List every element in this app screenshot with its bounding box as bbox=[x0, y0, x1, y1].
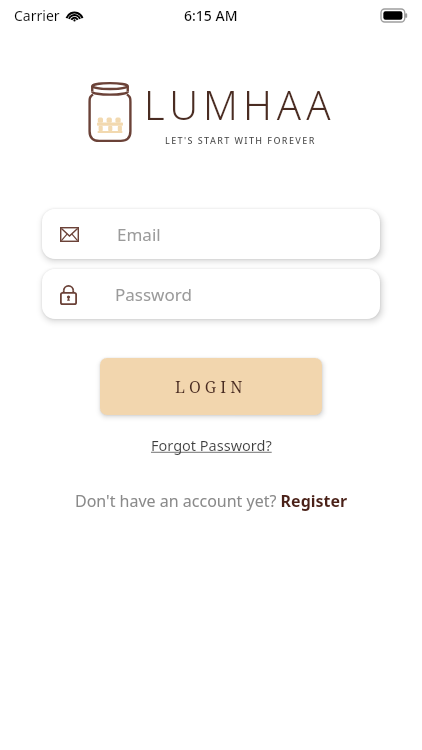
staticText: 6:15 AM bbox=[184, 6, 238, 25]
staticText: Email bbox=[117, 223, 161, 246]
staticText: LOGIN bbox=[175, 376, 247, 398]
staticText: LUMHAA bbox=[144, 77, 336, 131]
staticText: Don't have an account yet? Register bbox=[75, 490, 348, 512]
staticText: Carrier bbox=[14, 6, 60, 25]
button[interactable]: Password bbox=[42, 269, 380, 319]
button[interactable]: Don't have an account yet? Register bbox=[69, 488, 354, 514]
button[interactable]: Email bbox=[42, 209, 380, 259]
staticText: Password bbox=[115, 283, 192, 306]
staticText: LET'S START WITH FOREVER bbox=[165, 134, 316, 146]
staticText: Forgot Password? bbox=[151, 435, 272, 455]
button[interactable]: Forgot Password? bbox=[145, 433, 278, 457]
button[interactable]: LOGIN bbox=[100, 358, 322, 415]
